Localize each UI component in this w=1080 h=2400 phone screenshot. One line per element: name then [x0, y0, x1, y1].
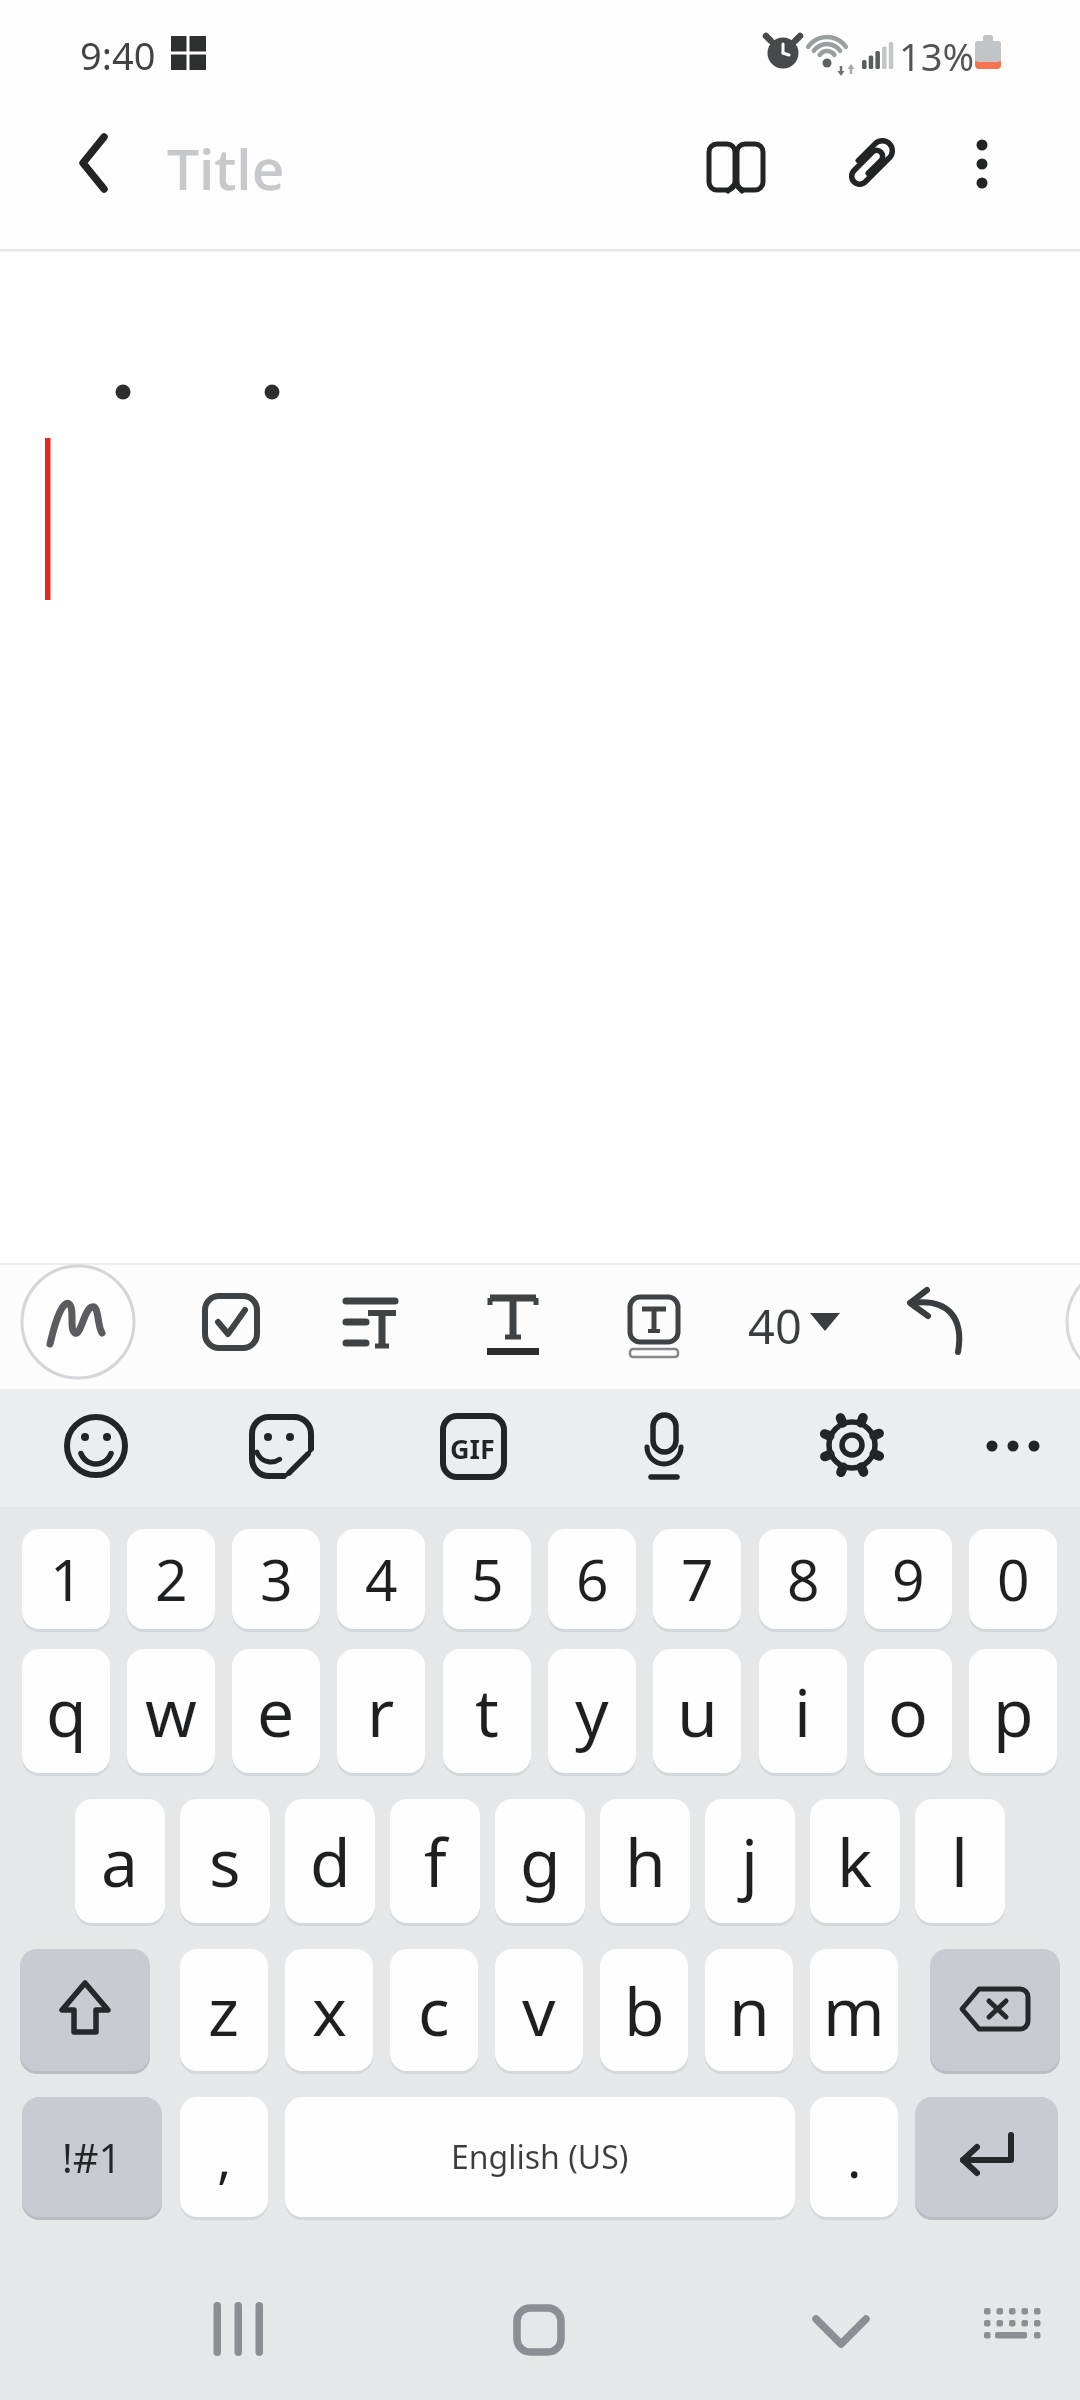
staticText: h: [625, 1816, 666, 1906]
staticText: ,: [217, 2120, 232, 2194]
staticText: i: [794, 1666, 812, 1756]
staticText: z: [208, 1965, 240, 2055]
staticText: v: [522, 1965, 556, 2055]
staticText: g: [520, 1816, 561, 1906]
staticText: c: [418, 1965, 450, 2055]
staticText: y: [575, 1666, 609, 1756]
staticText: GIF: [450, 1430, 495, 1467]
staticText: u: [677, 1666, 718, 1756]
staticText: w: [145, 1666, 197, 1756]
staticText: 7: [681, 1540, 714, 1618]
staticText: m: [823, 1965, 885, 2055]
staticText: f: [424, 1816, 447, 1906]
staticText: l: [951, 1816, 969, 1906]
staticText: t: [475, 1666, 499, 1756]
staticText: p: [993, 1666, 1034, 1756]
staticText: a: [101, 1816, 139, 1906]
staticText: e: [257, 1666, 295, 1756]
staticText: 4: [365, 1540, 398, 1618]
staticText: Title: [167, 129, 285, 207]
staticText: k: [837, 1816, 873, 1906]
staticText: b: [624, 1965, 665, 2055]
staticText: !#1: [62, 2130, 122, 2184]
staticText: j: [741, 1816, 759, 1906]
staticText: r: [367, 1666, 395, 1756]
staticText: o: [888, 1666, 928, 1756]
staticText: 9:40: [80, 29, 156, 81]
staticText: 13%: [899, 30, 975, 82]
staticText: q: [46, 1666, 87, 1756]
staticText: 6: [576, 1540, 609, 1618]
staticText: .: [847, 2120, 862, 2194]
staticText: 3: [260, 1540, 293, 1618]
staticText: English (US): [451, 2135, 629, 2179]
staticText: 1: [50, 1540, 83, 1618]
staticText: 2: [155, 1540, 188, 1618]
staticText: 9: [892, 1540, 925, 1618]
staticText: x: [312, 1965, 347, 2055]
staticText: 40: [748, 1294, 802, 1358]
staticText: s: [209, 1816, 241, 1906]
staticText: 5: [471, 1540, 504, 1618]
staticText: n: [729, 1965, 770, 2055]
staticText: d: [310, 1816, 351, 1906]
staticText: 8: [787, 1540, 820, 1618]
staticText: 0: [997, 1540, 1030, 1618]
